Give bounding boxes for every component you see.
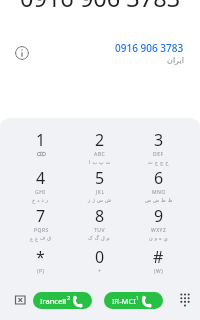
staticText: 2 [67, 294, 71, 301]
button[interactable]: Backspace [8, 291, 28, 309]
staticText: ABC [94, 151, 106, 158]
staticText: DEF [153, 151, 164, 158]
staticText: 0916 906 3783 [20, 0, 181, 14]
staticText: (W) [154, 268, 164, 275]
staticText: WXYZ [151, 227, 167, 234]
staticText: IR-MCI [112, 296, 136, 306]
staticText: * [36, 246, 45, 268]
staticText: 2 [95, 129, 105, 151]
staticText: ر ذ د خ [32, 197, 49, 204]
staticText: + [98, 268, 102, 275]
staticText: 8 [95, 205, 105, 227]
staticText: (P) [37, 268, 45, 275]
button[interactable]: 9 [129, 205, 188, 243]
button[interactable]: 8 [70, 205, 129, 243]
button[interactable]: 5 [70, 167, 129, 205]
staticText: # [153, 246, 164, 268]
button[interactable]: 2 [70, 129, 129, 167]
staticText: ت پ ب ا [89, 159, 111, 166]
button[interactable]: 3 [129, 129, 188, 167]
button[interactable]: Call details [15, 46, 29, 60]
staticText: 5 [95, 167, 105, 189]
staticText: PQRS [34, 227, 49, 234]
staticText: 6 [154, 167, 164, 189]
button[interactable]: # [129, 246, 188, 284]
staticText: JKL [96, 189, 105, 196]
staticText: 4 [36, 167, 46, 189]
staticText: 9 [154, 205, 164, 227]
staticText: Irancell [40, 296, 67, 306]
staticText: ش س ژ ز [88, 197, 112, 204]
staticText: 3 [154, 129, 164, 151]
button[interactable]: * [11, 246, 70, 284]
staticText: م ل گ ک [88, 235, 111, 242]
button[interactable]: IR-MCI [104, 292, 163, 309]
button[interactable]: 0 [70, 246, 129, 284]
staticText: ظ ط ض ص [145, 197, 173, 204]
button[interactable]: 6 [129, 167, 188, 205]
staticText: 7 [36, 205, 46, 227]
staticText: 0 [95, 246, 105, 268]
button[interactable]: Dialpad [175, 291, 195, 309]
button[interactable]: 4 [11, 167, 70, 205]
staticText: 1 [36, 129, 46, 151]
staticText: ایران [167, 56, 184, 65]
button[interactable]: 7 [11, 205, 70, 243]
staticText: TUV [94, 227, 105, 234]
button[interactable]: Irancell [33, 292, 92, 309]
staticText: 1 [136, 294, 140, 301]
staticText: MNO [152, 189, 166, 196]
staticText: ق ف غ ع [30, 235, 52, 242]
button[interactable]: 1 [11, 129, 70, 167]
staticText: ی ه و ن [149, 235, 168, 242]
staticText: 0916 906 3783 [115, 41, 184, 55]
staticText: ح چ ج ث [148, 159, 169, 166]
staticText: GHI [35, 189, 46, 196]
